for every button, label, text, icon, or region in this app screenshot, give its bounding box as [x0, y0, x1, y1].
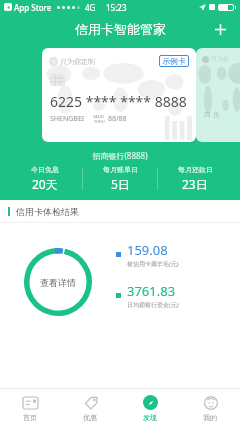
staticText: 3761.83	[127, 282, 176, 300]
staticText: 6225 **** **** 8888	[50, 92, 187, 111]
staticText: 5日	[111, 176, 130, 192]
staticText: 今日免息	[31, 165, 59, 174]
staticText: 23日	[182, 176, 208, 192]
staticText: 招商银行(8888)	[0, 150, 240, 161]
button[interactable]: 查看详情	[24, 248, 92, 316]
button[interactable]: 首页	[0, 389, 60, 427]
staticText: 每月还款日	[178, 165, 213, 174]
staticText: 88/88	[108, 114, 127, 124]
button[interactable]: 每月还款日	[158, 165, 232, 192]
button[interactable]: Add card	[210, 19, 230, 39]
staticText: 只为你定制	[60, 57, 95, 66]
staticText: 159.08	[127, 241, 168, 259]
staticText: VALID	[93, 114, 105, 119]
staticText: 优惠	[83, 413, 97, 422]
button[interactable]: 发现	[120, 389, 180, 427]
staticText: 4G	[85, 2, 96, 13]
button[interactable]: 我的	[180, 389, 240, 427]
staticText: 被信用卡薅羊毛(元)	[127, 260, 179, 268]
button[interactable]: 每月账单日	[83, 165, 157, 192]
button[interactable]: 只为你	[196, 48, 240, 142]
staticText: 首页	[23, 413, 37, 422]
staticText: 只为你	[211, 55, 229, 63]
staticText: 示例卡	[162, 56, 186, 66]
staticText: 每月账单日	[103, 165, 138, 174]
staticText: 卡	[51, 59, 56, 65]
staticText: THRU	[94, 119, 105, 124]
staticText: 回 免	[204, 110, 220, 120]
button[interactable]: 优惠	[60, 389, 120, 427]
staticText: 20天	[32, 176, 58, 192]
staticText: App Store	[14, 2, 52, 13]
button[interactable]: 今日免息	[8, 165, 82, 192]
staticText: 日均霸银行资金(元)	[127, 301, 179, 309]
staticText: 信用卡体检结果	[16, 206, 79, 217]
staticText: 信用卡智能管家	[75, 21, 166, 37]
staticText: 我的	[203, 413, 217, 422]
staticText: 发现	[143, 413, 157, 422]
staticText: SHENGBEI	[50, 114, 85, 124]
staticText: 15:23	[106, 2, 127, 13]
button[interactable]: 卡	[42, 48, 196, 142]
staticText: 查看详情	[40, 277, 76, 288]
